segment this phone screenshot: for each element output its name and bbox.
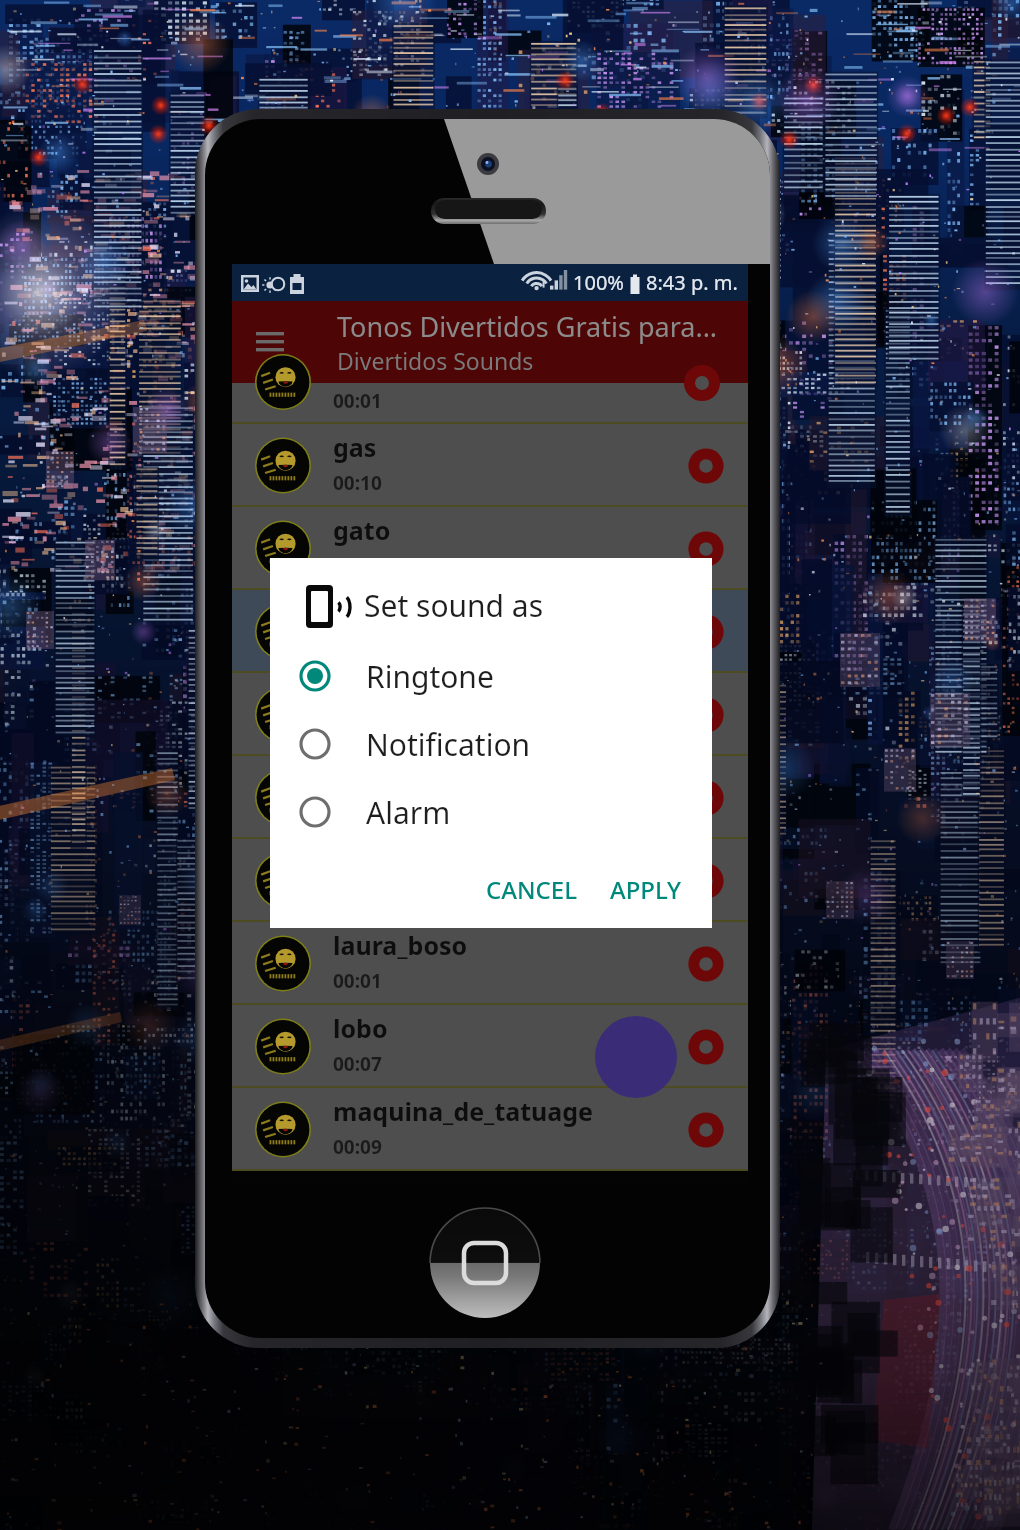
staticText: 00:09 bbox=[333, 1134, 382, 1160]
staticText: Set sound as bbox=[364, 585, 544, 626]
staticText: APPLY bbox=[610, 873, 682, 906]
button[interactable]: Set ringtone bbox=[685, 860, 727, 902]
staticText: 00:07 bbox=[333, 1051, 382, 1077]
button[interactable]: Ringtone bbox=[270, 642, 712, 710]
button[interactable]: Set ringtone bbox=[685, 943, 727, 985]
staticText: 8:43 p. m. bbox=[646, 269, 738, 296]
staticText: 100% bbox=[573, 269, 624, 296]
staticText: 00:01 bbox=[333, 388, 382, 414]
staticText: 00:01 bbox=[333, 968, 382, 994]
staticText: Notification bbox=[366, 724, 531, 765]
button[interactable]: gato bbox=[232, 507, 748, 590]
button[interactable]: CANCEL bbox=[470, 865, 594, 914]
button[interactable]: Set ringtone bbox=[685, 611, 727, 653]
button[interactable]: maquina_de_tatuage bbox=[232, 1088, 748, 1171]
staticText: 00:10 bbox=[333, 470, 382, 496]
staticText: Divertidos Sounds bbox=[337, 345, 534, 376]
button[interactable]: Set ringtone bbox=[685, 528, 727, 570]
button[interactable]: Set ringtone bbox=[685, 694, 727, 736]
staticText: CANCEL bbox=[486, 873, 578, 906]
staticText: laura_boso bbox=[333, 928, 468, 962]
button[interactable]: Open navigation drawer bbox=[244, 316, 296, 368]
staticText: Alarm bbox=[366, 792, 451, 833]
button[interactable]: APPLY bbox=[594, 865, 698, 914]
staticText: lobo bbox=[333, 1011, 388, 1045]
button[interactable]: laura_boso bbox=[232, 922, 748, 1005]
staticText: 00:05 bbox=[333, 719, 382, 745]
staticText: gato bbox=[333, 513, 391, 547]
button[interactable]: grillo bbox=[232, 673, 748, 756]
staticText: gemido bbox=[333, 596, 428, 630]
button[interactable]: lobo bbox=[232, 1005, 748, 1088]
button[interactable]: Set ringtone bbox=[685, 1026, 727, 1068]
staticText: gas bbox=[333, 430, 377, 464]
button[interactable]: Set ringtone bbox=[685, 1109, 727, 1151]
button[interactable]: 00:01 bbox=[232, 383, 748, 424]
button[interactable]: Alarm bbox=[270, 778, 712, 846]
button[interactable]: Set ringtone bbox=[685, 445, 727, 487]
button[interactable]: Notification bbox=[270, 710, 712, 778]
button[interactable]: gas bbox=[232, 424, 748, 507]
button[interactable]: Set ringtone bbox=[685, 777, 727, 819]
button[interactable]: gemido bbox=[232, 590, 748, 673]
staticText: Tonos Divertidos Gratis para... bbox=[337, 308, 718, 345]
button[interactable]: hiena bbox=[232, 756, 748, 839]
staticText: 00:04 bbox=[333, 553, 382, 579]
staticText: grillo bbox=[333, 679, 398, 713]
staticText: Ringtone bbox=[366, 656, 494, 697]
staticText: 00:03 bbox=[333, 802, 382, 828]
staticText: maquina_de_tatuage bbox=[333, 1094, 594, 1128]
button[interactable]: ja_ja_ja bbox=[232, 839, 748, 922]
